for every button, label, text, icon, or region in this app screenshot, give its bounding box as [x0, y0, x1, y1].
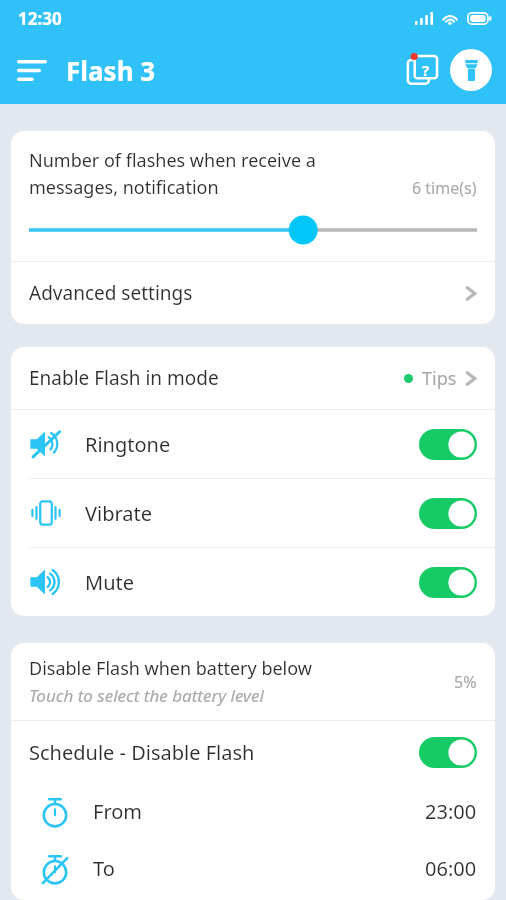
button[interactable]: Advanced settings: [11, 262, 495, 324]
staticText: Ringtone: [85, 431, 419, 458]
staticText: Disable Flash when battery below: [29, 656, 312, 681]
staticText: 6 time(s): [412, 177, 477, 199]
button[interactable]: Ringtone enabled: [419, 429, 477, 460]
button[interactable]: Number of flashes when receive a message…: [11, 131, 495, 261]
button[interactable]: Vibrate enabled: [419, 498, 477, 529]
staticText: ?: [422, 60, 430, 80]
staticText: From: [93, 798, 425, 825]
staticText: Enable Flash in mode: [29, 365, 404, 391]
button[interactable]: Vibrate: [11, 479, 495, 547]
staticText: 12:30: [18, 7, 62, 30]
staticText: Schedule - Disable Flash: [29, 739, 419, 766]
button[interactable]: From: [11, 783, 495, 840]
staticText: Number of flashes when receive a message…: [29, 148, 402, 199]
staticText: 06:00: [425, 855, 477, 882]
staticText: Flash 3: [66, 53, 156, 88]
button[interactable]: To: [11, 840, 495, 897]
button[interactable]: Turn on flashlight: [450, 49, 492, 91]
staticText: Tips: [422, 366, 457, 391]
staticText: Touch to select the battery level: [29, 684, 264, 707]
staticText: 23:00: [425, 798, 477, 825]
button[interactable]: Mute enabled: [419, 567, 477, 598]
staticText: Vibrate: [85, 500, 419, 527]
button[interactable]: Disable Flash when battery below: [11, 643, 495, 720]
staticText: Advanced settings: [29, 280, 465, 306]
button[interactable]: Help: [400, 47, 446, 93]
button[interactable]: Mute: [11, 548, 495, 616]
button[interactable]: Enable Flash in mode: [11, 347, 495, 409]
staticText: 5%: [454, 671, 477, 693]
button[interactable]: Schedule - Disable Flash: [11, 721, 495, 783]
staticText: Mute: [85, 569, 419, 596]
button[interactable]: Schedule enabled: [419, 737, 477, 768]
staticText: To: [93, 855, 425, 882]
button[interactable]: Ringtone: [11, 410, 495, 478]
button[interactable]: Open navigation menu: [8, 46, 56, 94]
